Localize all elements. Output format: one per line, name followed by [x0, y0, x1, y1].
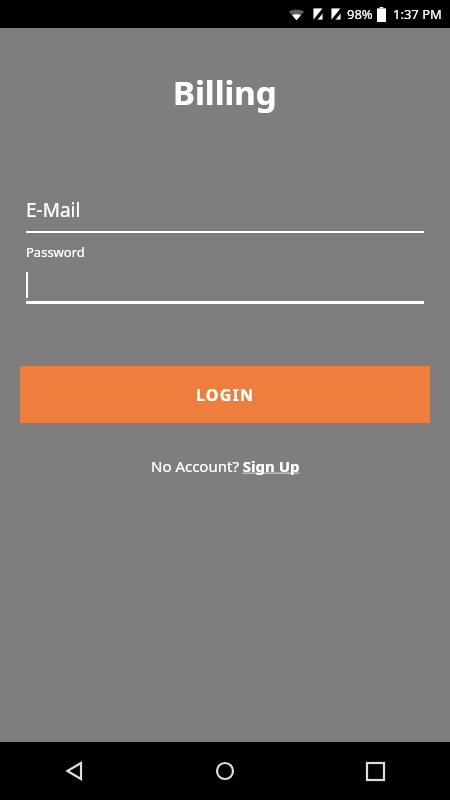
- staticText: Billing: [173, 70, 277, 115]
- button[interactable]: Home: [150, 742, 300, 800]
- staticText: 98%: [347, 5, 373, 23]
- button[interactable]: Recent apps: [300, 742, 450, 800]
- staticText: 1:37 PM: [393, 5, 442, 23]
- button[interactable]: Back: [0, 742, 150, 800]
- staticText: E-Mail: [26, 197, 81, 223]
- button[interactable]: No Account? Sign Up: [151, 456, 300, 476]
- staticText: Password: [26, 243, 85, 261]
- button[interactable]: Password: [26, 243, 424, 304]
- button[interactable]: E-Mail: [26, 197, 424, 233]
- staticText: LOGIN: [196, 384, 255, 406]
- staticText: No Account? Sign Up: [151, 456, 300, 476]
- button[interactable]: LOGIN: [20, 366, 430, 423]
